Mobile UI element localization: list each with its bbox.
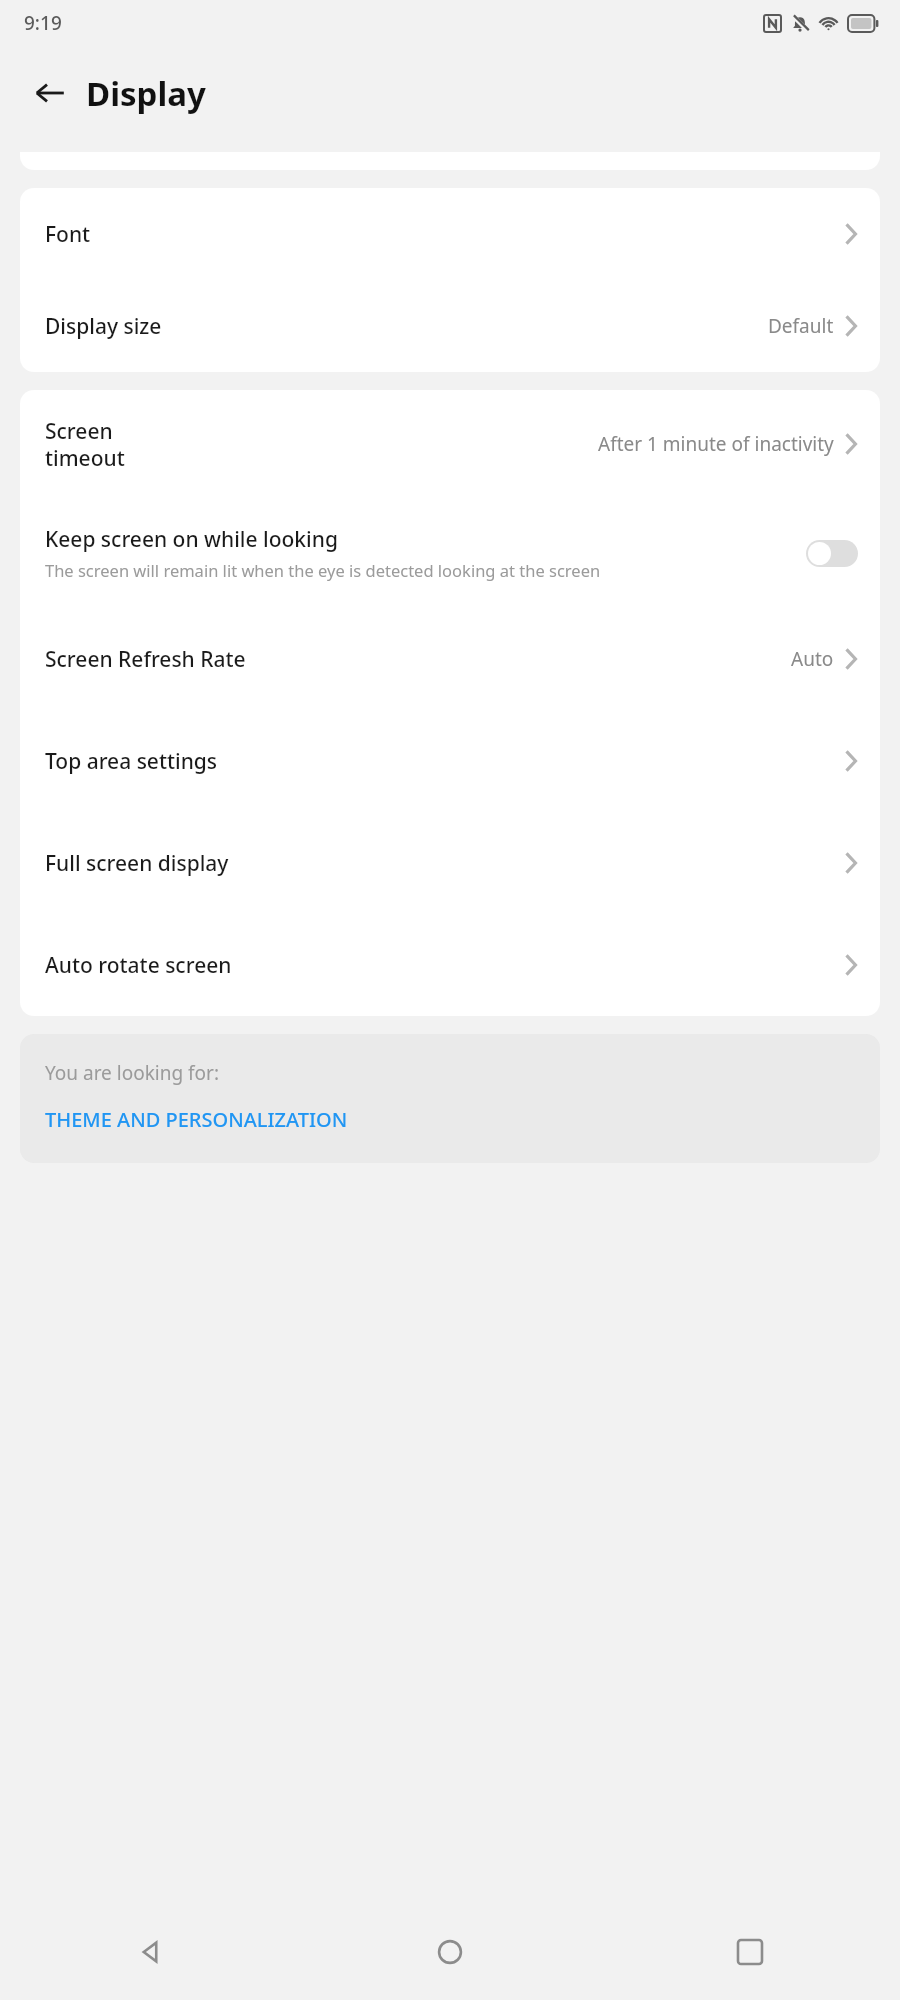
button[interactable]: Top area settings — [20, 710, 880, 812]
button[interactable]: Auto rotate screen — [20, 914, 880, 1016]
button[interactable]: Keep screen on while looking toggle — [806, 540, 858, 567]
staticText: The screen will remain lit when the eye … — [45, 559, 601, 581]
staticText: Auto — [791, 646, 834, 672]
staticText: Default — [768, 313, 834, 339]
staticText: Display size — [45, 312, 162, 341]
button[interactable]: Recent apps — [600, 1904, 900, 2000]
staticText: Keep screen on while looking — [45, 525, 338, 554]
staticText: Screen timeout — [45, 417, 195, 472]
staticText: Display — [86, 71, 206, 116]
staticText: THEME AND PERSONALIZATION — [45, 1106, 348, 1133]
button[interactable]: Back — [24, 67, 76, 119]
button[interactable]: Screen Refresh Rate — [20, 608, 880, 710]
staticText: Top area settings — [45, 747, 218, 776]
staticText: Screen Refresh Rate — [45, 645, 246, 674]
button[interactable]: Keep screen on while looking — [20, 498, 880, 608]
staticText: Full screen display — [45, 849, 229, 878]
button[interactable]: Display size — [20, 280, 880, 372]
button[interactable]: Screen timeout — [20, 390, 880, 498]
button[interactable]: Full screen display — [20, 812, 880, 914]
button[interactable]: Font — [20, 188, 880, 280]
staticText: Auto rotate screen — [45, 951, 232, 980]
staticText: 9:19 — [24, 10, 62, 36]
button[interactable]: Back — [0, 1904, 300, 2000]
staticText: Font — [45, 220, 91, 249]
button[interactable]: Home — [300, 1904, 600, 2000]
button[interactable]: You are looking for: — [20, 1034, 880, 1163]
staticText: After 1 minute of inactivity — [598, 431, 834, 457]
staticText: You are looking for: — [45, 1060, 220, 1086]
